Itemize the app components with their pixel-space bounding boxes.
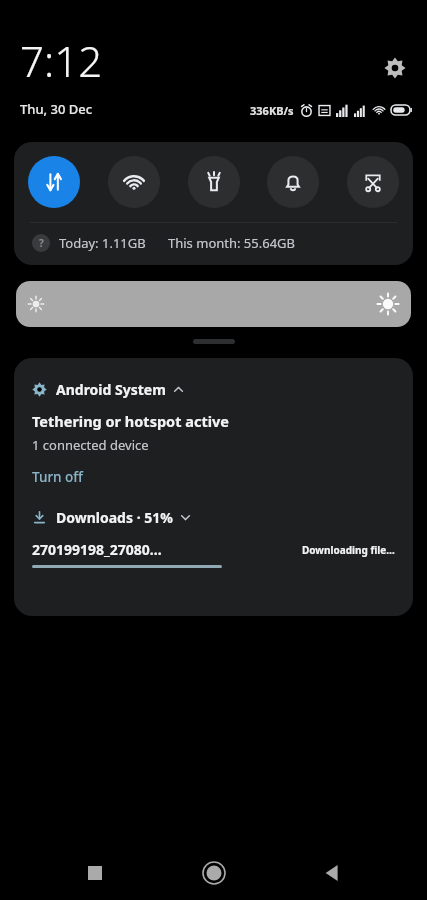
button[interactable]: Settings xyxy=(377,50,413,86)
button[interactable]: Back xyxy=(308,849,356,897)
button[interactable]: Mobile data xyxy=(28,156,80,208)
button[interactable]: ? xyxy=(14,223,413,265)
staticText: Today: 1.11GB xyxy=(59,234,146,252)
staticText: Downloads · 51% xyxy=(56,508,173,527)
button[interactable]: Screenshot xyxy=(347,156,399,208)
staticText: Tethering or hotspot active xyxy=(32,411,229,431)
staticText: Android System xyxy=(56,380,166,399)
button[interactable]: Brightness xyxy=(16,281,411,327)
button[interactable]: Recents xyxy=(71,849,119,897)
button[interactable]: Turn off xyxy=(32,468,83,486)
staticText: 270199198_270801645043583_2… xyxy=(32,540,167,559)
staticText: ? xyxy=(39,236,44,250)
staticText: Downloading file… xyxy=(302,543,395,557)
staticText: 336KB/s xyxy=(250,103,294,118)
staticText: Thu, 30 Dec xyxy=(20,100,93,118)
staticText: Turn off xyxy=(32,468,83,486)
staticText: 1 connected device xyxy=(32,436,149,454)
button[interactable]: Android System xyxy=(14,358,413,454)
button[interactable]: Downloads · 51% xyxy=(14,508,413,568)
button[interactable]: Home xyxy=(190,849,238,897)
staticText: This month: 55.64GB xyxy=(168,234,296,252)
button[interactable]: Wi-Fi xyxy=(108,156,160,208)
staticText: 7:12 xyxy=(20,32,103,89)
button[interactable]: Do not disturb xyxy=(267,156,319,208)
button[interactable]: Flashlight xyxy=(188,156,240,208)
